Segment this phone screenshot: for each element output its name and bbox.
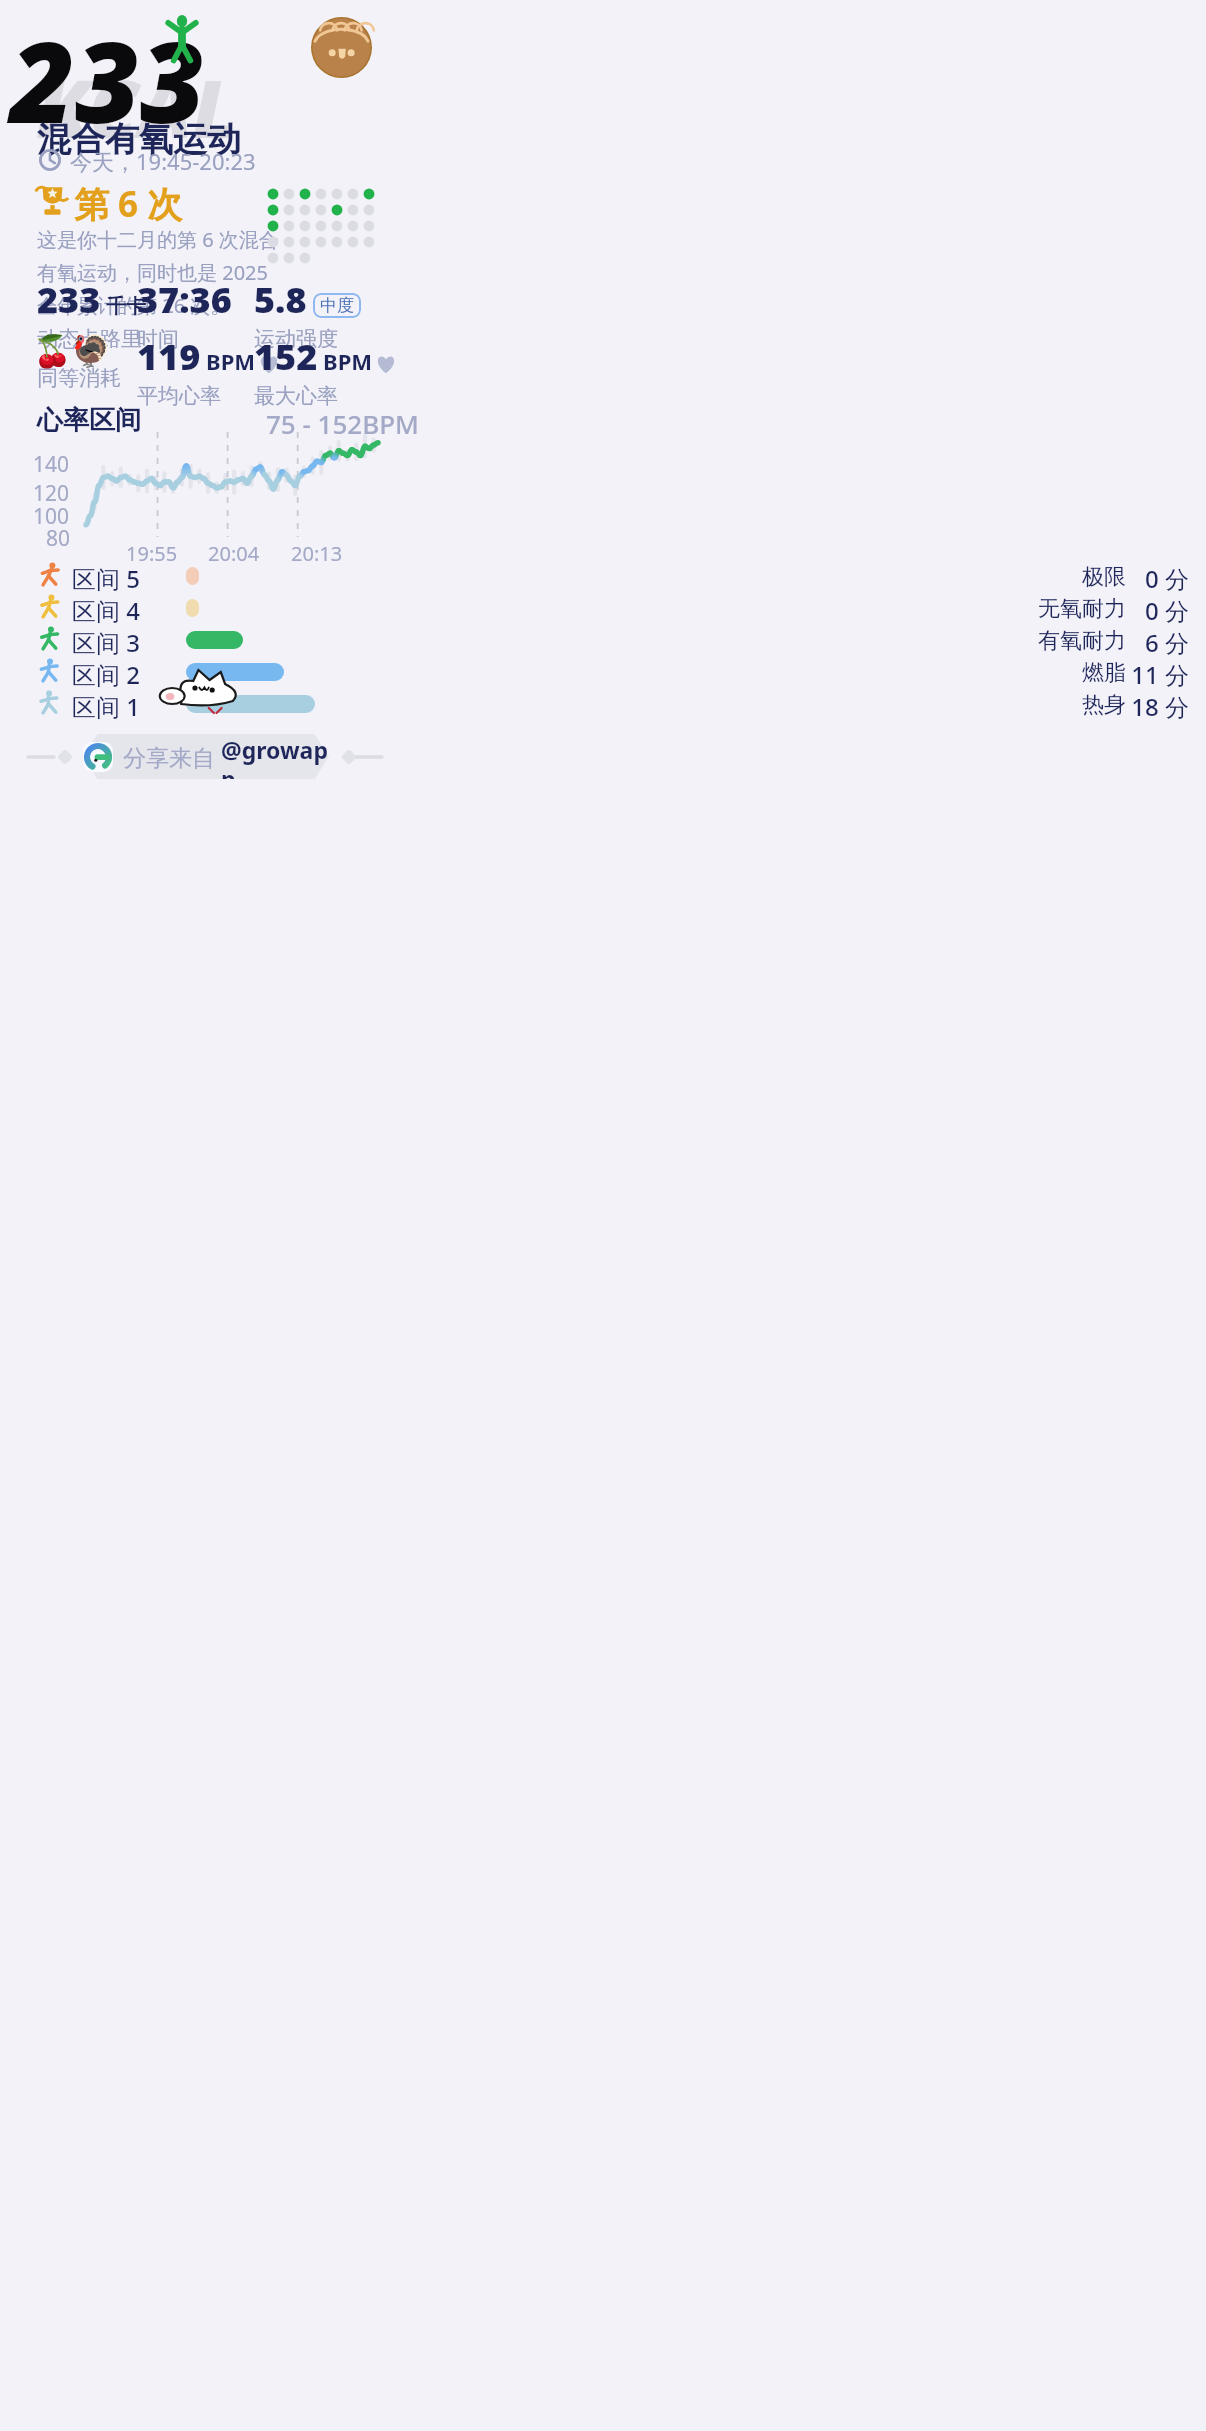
staticText: 区间 4: [72, 594, 140, 626]
staticText: 心率区间: [37, 404, 141, 437]
staticText: 19:55: [126, 540, 178, 567]
button[interactable]: Profile avatar: [311, 17, 372, 78]
staticText: @growapp: [221, 734, 329, 779]
staticText: 140: [33, 450, 70, 479]
staticText: 这是你十二月的第 6 次混合有氧运动，同时也是 2025 全年累计的第 26 次…: [37, 226, 285, 319]
staticText: 有氧耐力: [0, 627, 1126, 655]
staticText: 152: [254, 332, 318, 381]
staticText: 平均心率: [137, 383, 221, 409]
staticText: 119: [137, 332, 201, 381]
button[interactable]: 区间 3: [0, 622, 1206, 654]
staticText: 120: [33, 479, 70, 508]
staticText: BPM: [206, 346, 256, 376]
staticText: 无氧耐力: [0, 595, 1126, 623]
staticText: 80: [46, 524, 71, 553]
staticText: BPM: [323, 346, 373, 376]
staticText: 第 6 次: [74, 180, 183, 228]
staticText: 233: [10, 3, 205, 156]
staticText: 区间 5: [72, 562, 140, 594]
staticText: 🍒🦃: [33, 333, 111, 369]
staticText: 最大心率: [254, 383, 338, 409]
staticText: 0 分: [0, 594, 1189, 626]
button[interactable]: 分享来自: [83, 734, 329, 779]
button[interactable]: 区间 5: [0, 558, 1206, 590]
staticText: 233: [37, 275, 101, 324]
staticText: 动态卡路里: [37, 326, 142, 352]
staticText: 20:04: [208, 540, 260, 567]
staticText: 20:13: [291, 540, 343, 567]
staticText: 极限: [0, 563, 1126, 591]
staticText: 区间 3: [72, 626, 140, 658]
staticText: 18 分: [0, 690, 1189, 722]
button[interactable]: 区间 2: [0, 654, 1206, 686]
staticText: 燃脂: [0, 659, 1126, 687]
staticText: 6 分: [0, 626, 1189, 658]
staticText: 今天，19:45-20:23: [70, 146, 256, 176]
staticText: 5.8: [254, 275, 307, 324]
staticText: 37:36: [137, 275, 232, 324]
staticText: 运动强度: [254, 326, 338, 352]
button[interactable]: 区间 4: [0, 590, 1206, 622]
button[interactable]: 区间 1: [0, 686, 1206, 718]
staticText: 区间 2: [72, 658, 140, 690]
staticText: 75 - 152BPM: [266, 406, 419, 441]
staticText: 中度: [320, 295, 354, 316]
staticText: 千卡: [106, 294, 146, 319]
staticText: 时间: [137, 326, 179, 352]
staticText: 同等消耗: [37, 365, 121, 391]
staticText: 热身: [0, 691, 1126, 719]
staticText: 100: [33, 502, 70, 531]
staticText: 0 分: [0, 562, 1189, 594]
staticText: KCAL: [36, 52, 235, 161]
staticText: 混合有氧运动: [37, 118, 241, 161]
staticText: 11 分: [0, 658, 1189, 690]
staticText: 分享来自: [123, 741, 221, 772]
staticText: 区间 1: [72, 690, 140, 722]
